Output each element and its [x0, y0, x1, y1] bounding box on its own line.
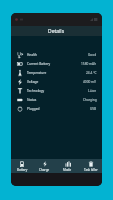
button[interactable]: Health: [11, 50, 102, 59]
staticText: Current Battery: [27, 62, 51, 66]
button[interactable]: Status: [11, 95, 102, 104]
button[interactable]: Temperature: [11, 68, 102, 77]
staticText: 4000 mV: [83, 80, 97, 84]
staticText: Charge: [39, 168, 50, 172]
staticText: Temperature: [27, 71, 47, 75]
button[interactable]: Task killer: [79, 159, 102, 173]
button[interactable]: Charge: [33, 159, 56, 173]
staticText: Plugged: [27, 107, 40, 111]
staticText: Li-ion: [88, 89, 97, 93]
staticText: Health: [27, 53, 37, 57]
staticText: Task killer: [84, 168, 98, 172]
staticText: USB: [90, 107, 97, 111]
staticText: Mode: [63, 168, 72, 172]
staticText: 1580 mAh: [81, 62, 97, 66]
button[interactable]: Plugged: [11, 104, 102, 113]
button[interactable]: Technology: [11, 86, 102, 95]
staticText: 24.4 °C: [86, 71, 97, 75]
staticText: Charging: [83, 98, 97, 102]
staticText: Details: [48, 28, 65, 35]
staticText: Battery: [17, 168, 28, 172]
button[interactable]: Current Battery: [11, 59, 102, 68]
staticText: Status: [27, 98, 37, 102]
button[interactable]: Voltage: [11, 77, 102, 86]
staticText: Technology: [27, 89, 45, 93]
staticText: Good: [88, 53, 97, 57]
staticText: Voltage: [27, 80, 39, 84]
button[interactable]: Mode: [56, 159, 79, 173]
button[interactable]: Battery: [11, 159, 33, 173]
